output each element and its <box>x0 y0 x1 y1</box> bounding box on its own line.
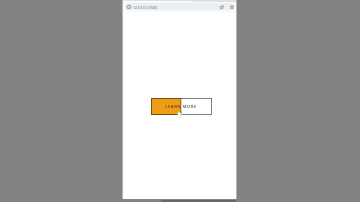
staticText: 127.0.0.1:5500 <box>133 5 158 10</box>
button[interactable]: LEARN MORE <box>151 98 212 115</box>
other: Bookmark this page <box>230 5 234 9</box>
button[interactable] <box>125 3 234 10</box>
staticText: LEARN MORE <box>165 104 197 110</box>
other: Share this page <box>220 5 224 9</box>
other: Pointer <box>177 111 182 118</box>
other: Site information <box>127 5 131 9</box>
